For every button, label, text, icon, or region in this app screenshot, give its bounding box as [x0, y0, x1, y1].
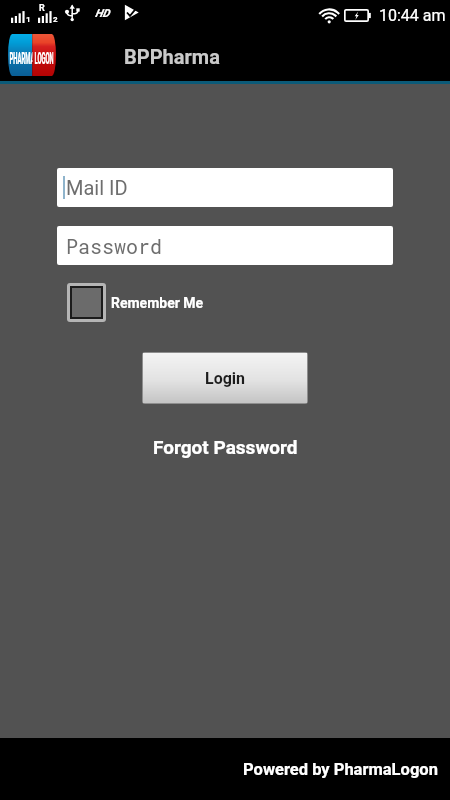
- staticText: Mail ID: [66, 176, 128, 199]
- staticText: Powered by PharmaLogon: [243, 760, 438, 779]
- staticText: 1: [26, 15, 31, 24]
- staticText: 10:44 am: [379, 6, 446, 25]
- staticText: R: [39, 3, 45, 14]
- button[interactable]: Remember Me: [67, 283, 204, 322]
- staticText: PHARMA: [9, 49, 32, 68]
- button[interactable]: Login: [143, 353, 307, 403]
- button[interactable]: Password: [57, 226, 393, 265]
- staticText: Forgot Password: [153, 436, 298, 458]
- button[interactable]: Mail ID: [57, 168, 393, 207]
- staticText: LOGON: [34, 49, 54, 68]
- staticText: Password: [66, 233, 163, 259]
- staticText: Remember Me: [111, 295, 204, 311]
- staticText: Login: [205, 369, 246, 388]
- button[interactable]: Forgot Password: [147, 433, 304, 461]
- staticText: HD: [95, 7, 110, 20]
- staticText: 2: [53, 15, 58, 24]
- staticText: BPPharma: [124, 45, 220, 68]
